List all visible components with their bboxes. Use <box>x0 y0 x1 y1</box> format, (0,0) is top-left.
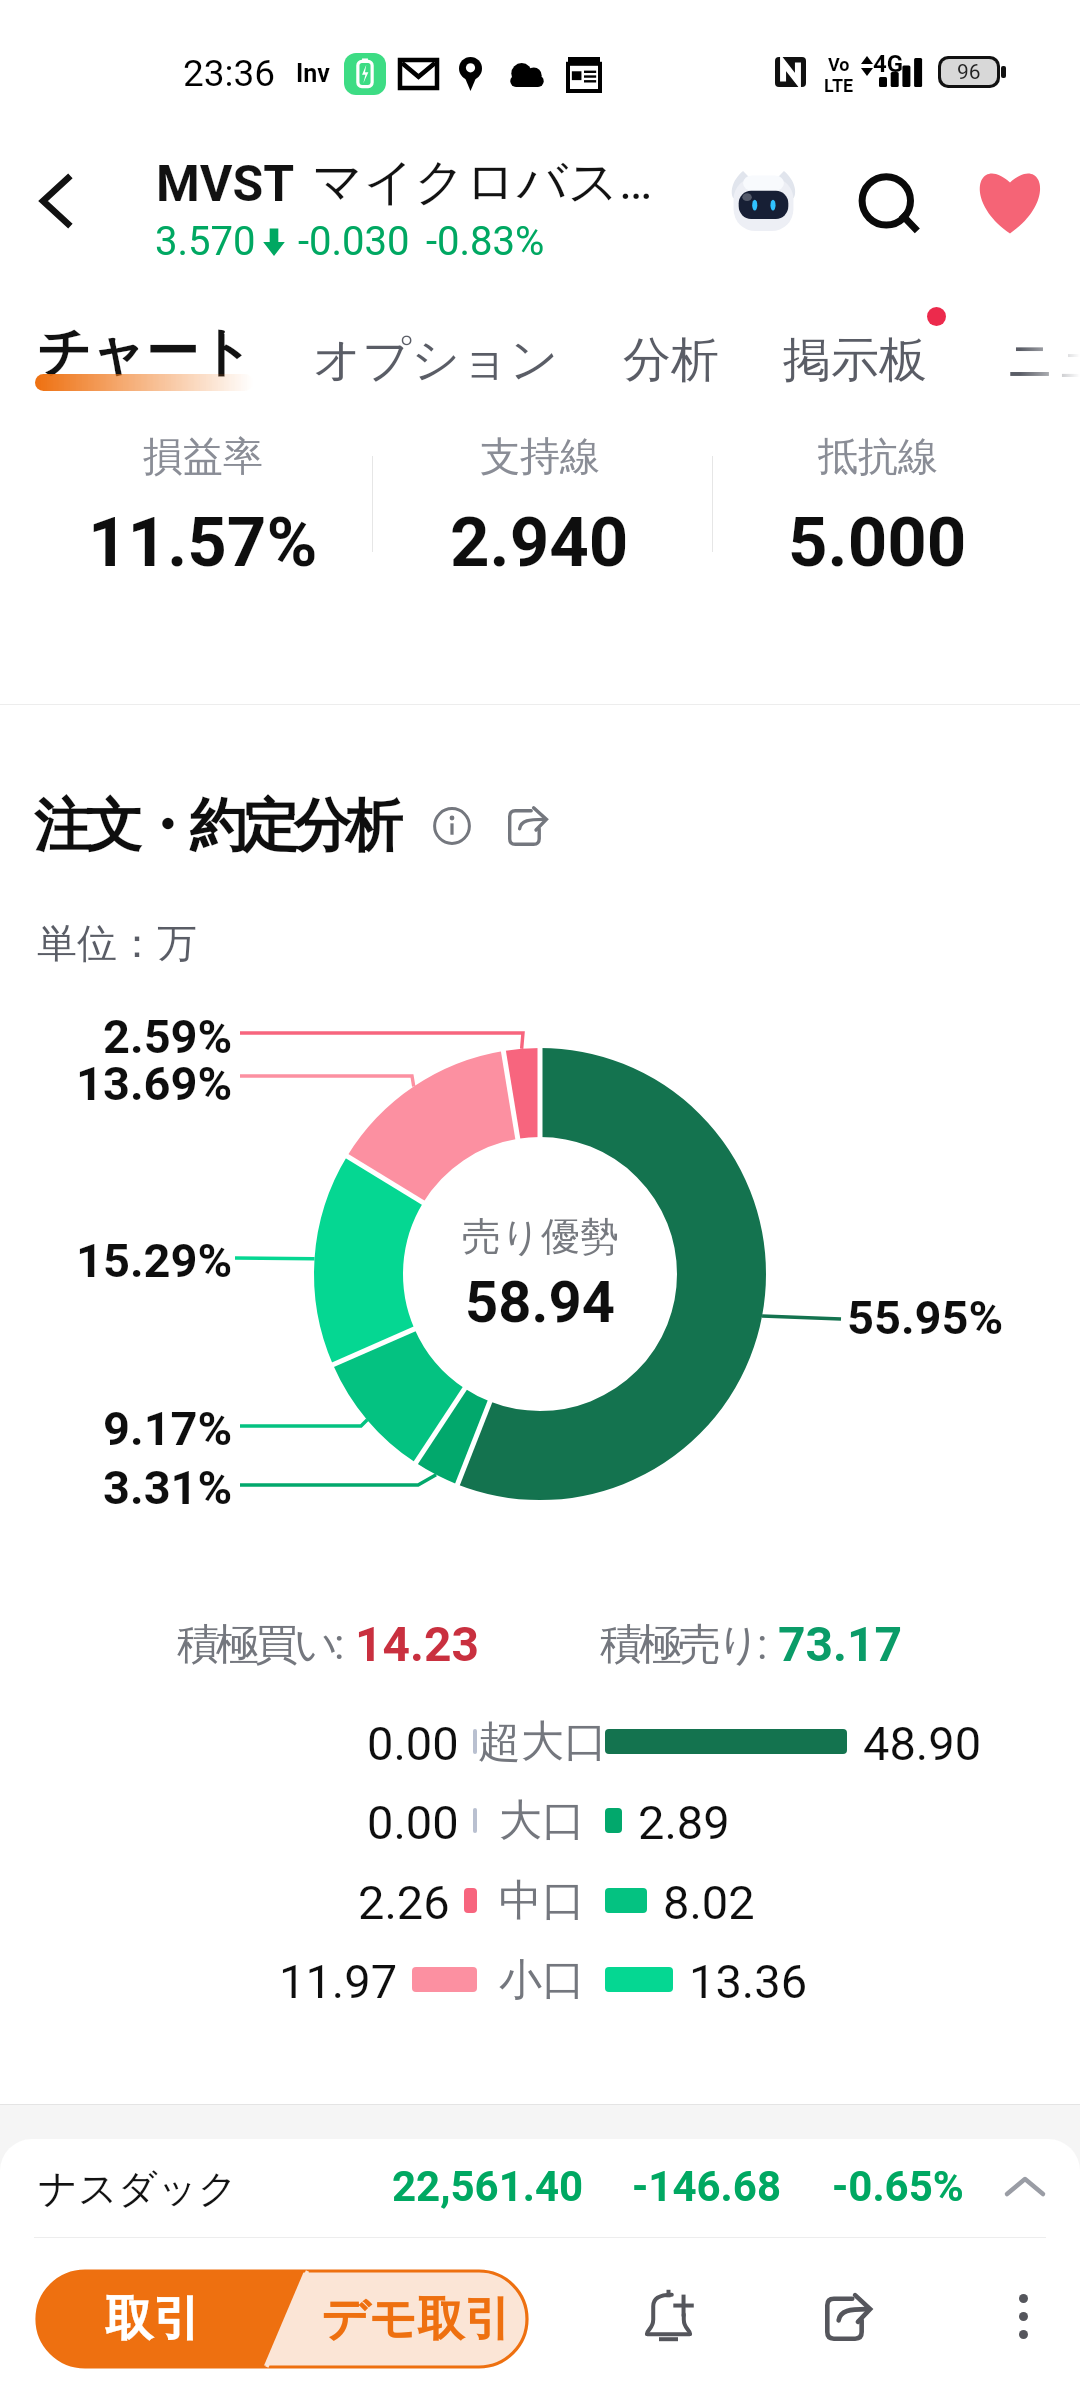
staticText: オプション <box>313 330 559 390</box>
button[interactable]: Price alert <box>620 2268 717 2365</box>
staticText: 11.57% <box>88 502 318 583</box>
staticText: 23:36 <box>183 52 276 95</box>
button[interactable]: 分析 <box>606 316 736 404</box>
staticText: MVST <box>156 155 295 214</box>
staticText: -0.030 <box>298 218 410 265</box>
staticText: 抵抗線 <box>818 431 938 481</box>
button[interactable]: チャート <box>20 305 270 400</box>
button[interactable]: Search <box>836 150 940 254</box>
staticText: 取引 <box>105 2289 201 2349</box>
staticText: -146.68 <box>632 2162 782 2211</box>
button[interactable]: Back <box>8 154 102 248</box>
staticText: 0.00 <box>367 1795 459 1850</box>
staticText: Vo <box>828 54 850 75</box>
staticText: 小口 <box>499 1953 585 2007</box>
staticText: 大口 <box>499 1794 585 1848</box>
staticText: チャート <box>37 319 253 386</box>
staticText: 2.940 <box>450 502 629 583</box>
staticText: 掲示板 <box>783 330 927 390</box>
button[interactable]: Info <box>424 798 480 854</box>
button[interactable]: More options <box>975 2268 1072 2365</box>
staticText: 58.94 <box>465 1268 615 1336</box>
staticText: 2.59% <box>103 1009 233 1064</box>
staticText: 13.69% <box>76 1056 233 1111</box>
staticText: 13.36 <box>689 1954 808 2009</box>
button[interactable]: デモ取引 <box>297 2271 527 2367</box>
staticText: 0.00 <box>367 1716 459 1771</box>
button[interactable]: AI assistant <box>711 149 815 253</box>
staticText: LTE <box>824 75 854 96</box>
staticText: マイクロバス… <box>312 151 653 214</box>
staticText: 4G <box>873 50 904 78</box>
staticText: 2.89 <box>638 1795 730 1850</box>
staticText: ニュ <box>1006 330 1080 390</box>
staticText: 8.02 <box>663 1875 755 1930</box>
staticText: 中口 <box>499 1874 585 1928</box>
staticText: 15.29% <box>76 1233 233 1288</box>
staticText: 96 <box>957 60 981 85</box>
button[interactable]: Share <box>800 2268 897 2365</box>
staticText: 5.000 <box>788 502 967 583</box>
staticText: 55.95% <box>847 1290 1004 1345</box>
staticText: Inv <box>296 59 330 88</box>
staticText: 48.90 <box>863 1716 982 1771</box>
staticText: 損益率 <box>143 431 263 481</box>
staticText: 22,561.40 <box>392 2162 584 2211</box>
button[interactable] <box>0 2139 1080 2237</box>
button[interactable]: オプション <box>296 316 576 404</box>
button[interactable]: 取引 <box>37 2271 297 2367</box>
staticText: 注文・約定分析 <box>36 790 400 862</box>
staticText: -0.65% <box>832 2162 964 2211</box>
button[interactable]: 掲示板 <box>766 316 944 404</box>
staticText: -0.83% <box>426 218 545 265</box>
staticText: 売り優勢 <box>462 1212 619 1261</box>
button[interactable]: ニュ <box>989 316 1080 404</box>
staticText: 積極買い: <box>177 1618 341 1672</box>
staticText: 支持線 <box>480 431 600 481</box>
staticText: 超大口 <box>478 1715 607 1769</box>
staticText: 11.97 <box>279 1954 398 2009</box>
staticText: 9.17% <box>103 1401 233 1456</box>
staticText: 積極売り: <box>600 1618 764 1672</box>
staticText: 分析 <box>623 330 719 390</box>
staticText: 3.570 <box>155 218 256 265</box>
staticText: 3.31% <box>103 1460 233 1515</box>
staticText: デモ取引 <box>321 2290 512 2349</box>
button[interactable]: Share <box>500 798 556 854</box>
staticText: ナスダック <box>38 2164 238 2213</box>
staticText: 単位：万 <box>37 918 197 968</box>
staticText: 73.17 <box>778 1616 903 1672</box>
button[interactable]: Favorite <box>958 148 1062 252</box>
staticText: 2.26 <box>358 1875 450 1930</box>
staticText: 14.23 <box>355 1616 480 1672</box>
